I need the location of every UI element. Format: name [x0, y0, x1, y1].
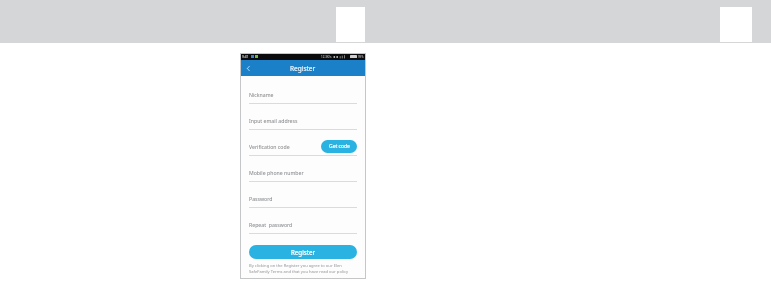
staticText: Register: [290, 64, 316, 73]
button[interactable]: Verification code: [249, 136, 357, 156]
staticText: Get code: [329, 143, 350, 150]
staticText: 99%: [358, 55, 364, 59]
staticText: Verification code: [249, 143, 290, 150]
staticText: Nickname: [249, 91, 274, 98]
button[interactable]: Password: [249, 188, 357, 208]
staticText: Input email address: [249, 117, 298, 124]
button[interactable]: Nickname: [249, 84, 357, 104]
button[interactable]: Register: [249, 245, 357, 259]
staticText: 12.3K/s: [321, 55, 332, 59]
button[interactable]: Terms and Privacy: [281, 276, 325, 279]
button[interactable]: Mobile phone number: [249, 162, 357, 182]
staticText: By clicking on the Register you agree to…: [249, 263, 357, 274]
staticText: Password: [249, 195, 273, 202]
staticText: Register: [291, 248, 315, 256]
button[interactable]: Input email address: [249, 110, 357, 130]
button[interactable]: Back: [240, 60, 256, 76]
button[interactable]: Get code: [321, 140, 357, 153]
staticText: 9:41: [242, 55, 249, 59]
button[interactable]: Repeat password: [249, 214, 357, 234]
staticText: Repeat password: [249, 221, 293, 228]
staticText: Mobile phone number: [249, 169, 304, 176]
